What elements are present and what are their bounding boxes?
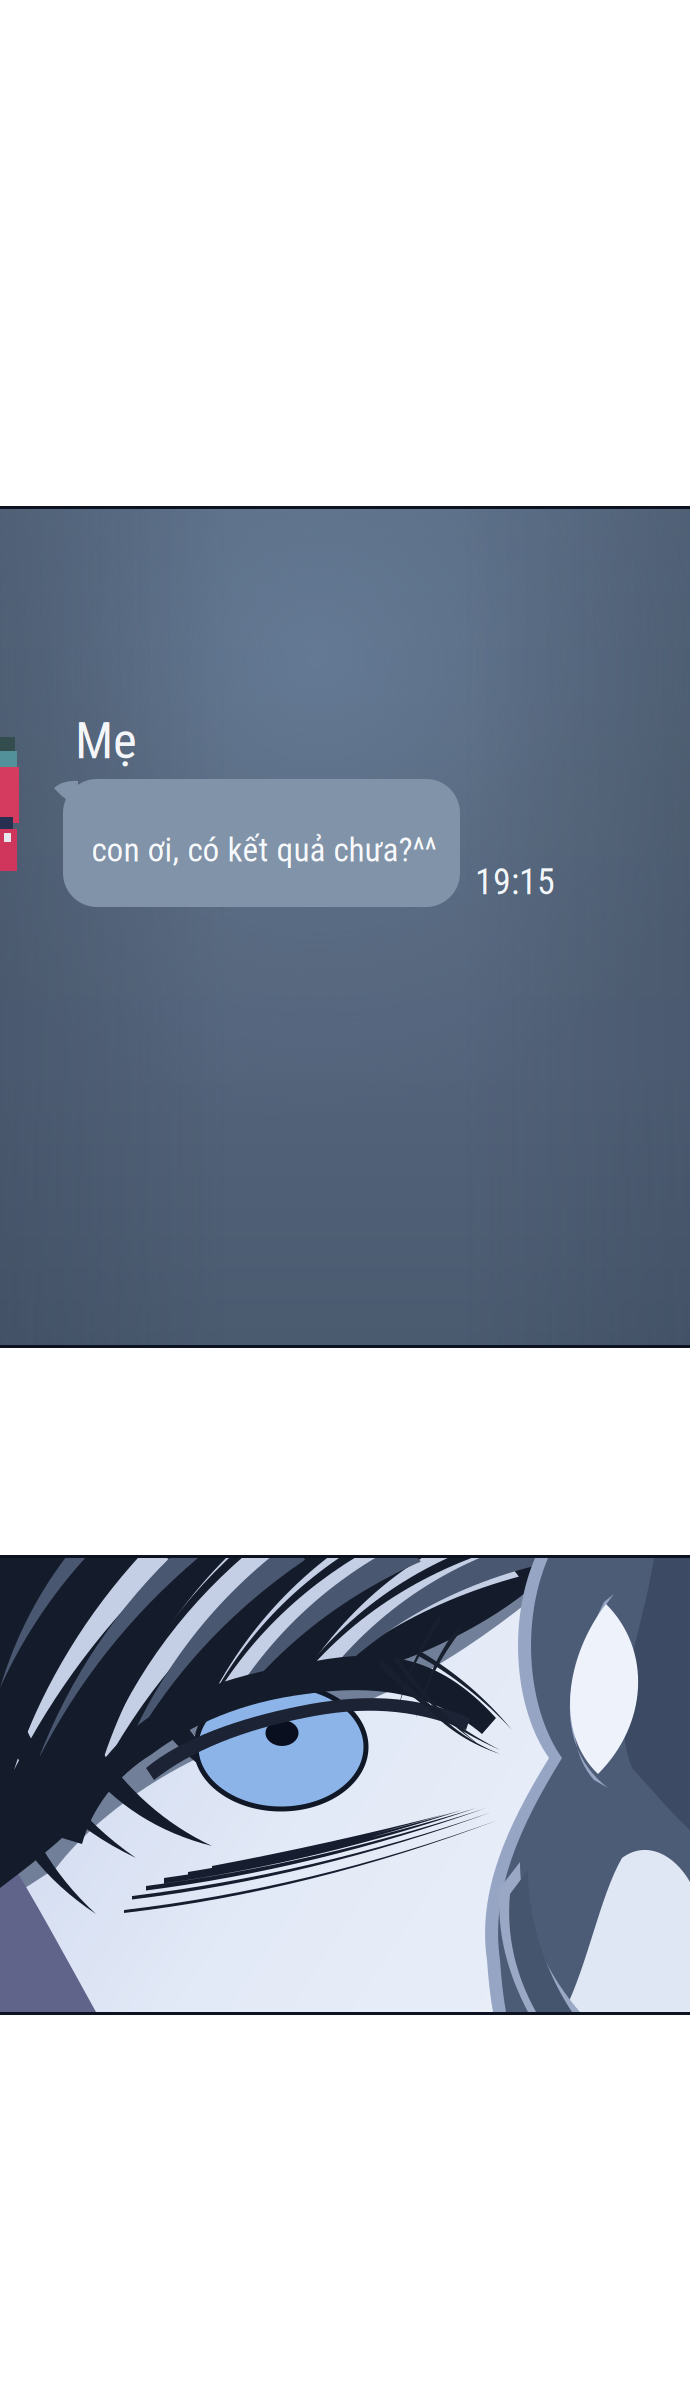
staticText: con ơi, có kết quả chưa?^^ bbox=[91, 830, 436, 870]
staticText: 19:15 bbox=[475, 861, 555, 903]
staticText: Mẹ bbox=[75, 711, 137, 771]
